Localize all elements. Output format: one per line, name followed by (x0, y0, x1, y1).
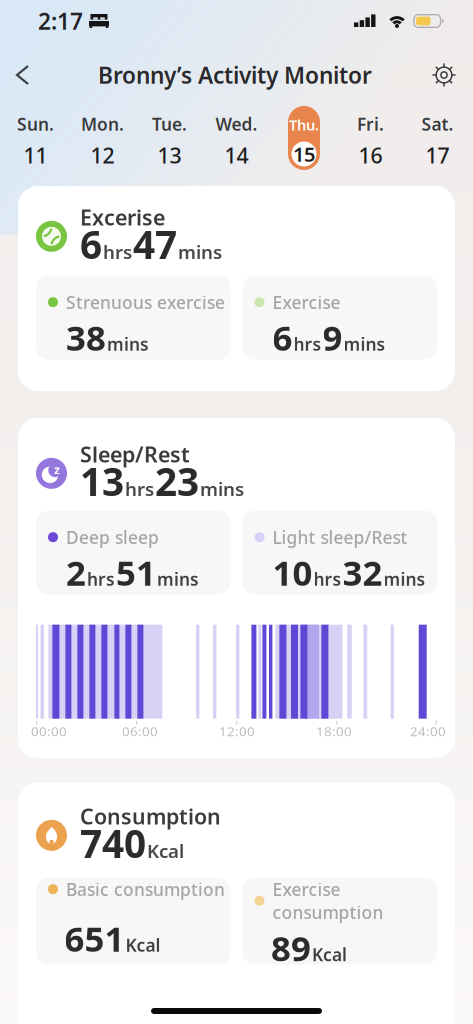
staticText: 16 (358, 141, 382, 169)
staticText: Strenuous exercise (66, 291, 225, 314)
staticText: Kcal (147, 838, 184, 863)
staticText: 13 (157, 141, 181, 169)
button[interactable]: Sat. 17 (404, 113, 471, 169)
staticText: Kcal (125, 933, 160, 956)
staticText: Wed. (215, 113, 257, 136)
staticText: hrs (313, 567, 341, 590)
staticText: Deep sleep (66, 526, 159, 549)
staticText: z (54, 462, 60, 478)
staticText: 2 (66, 549, 86, 595)
staticText: 6 (272, 314, 292, 360)
staticText: Thu. (289, 115, 319, 134)
staticText: 00:00 (31, 722, 67, 740)
staticText: Sleep/Rest (80, 440, 190, 468)
staticText: hrs (103, 239, 132, 264)
staticText: hrs (293, 332, 321, 355)
staticText: 47 (133, 218, 177, 270)
staticText: Mon. (81, 113, 124, 136)
staticText: Exercise (272, 878, 340, 901)
staticText: Light sleep/Rest (272, 526, 407, 549)
button[interactable]: Sun. 11 (2, 113, 69, 169)
staticText: hrs (87, 567, 115, 590)
staticText: Bronny’s Activity Monitor (98, 60, 372, 90)
button[interactable]: Settings (432, 63, 473, 87)
staticText: 15 (293, 141, 315, 167)
staticText: 10 (272, 549, 312, 595)
staticText: consumption (272, 901, 383, 924)
staticText: 14 (224, 141, 248, 169)
button[interactable]: Wed. 14 (203, 113, 270, 169)
staticText: 38 (66, 314, 106, 360)
button[interactable]: Back (0, 66, 38, 84)
staticText: 17 (425, 141, 449, 169)
button[interactable]: Mon. 12 (69, 113, 136, 169)
staticText: Basic consumption (66, 878, 225, 901)
staticText: 12:00 (219, 722, 255, 740)
staticText: mins (107, 332, 149, 355)
staticText: mins (200, 476, 244, 501)
staticText: mins (383, 567, 425, 590)
staticText: mins (178, 239, 222, 264)
staticText: 13 (80, 455, 124, 507)
staticText: mins (157, 567, 199, 590)
staticText: 9 (322, 314, 342, 360)
button[interactable]: Tue. 13 (136, 113, 203, 169)
staticText: 2:17 (38, 6, 83, 36)
staticText: Sun. (17, 113, 54, 136)
staticText: Kcal (312, 943, 347, 966)
staticText: hrs (125, 476, 154, 501)
button[interactable]: Fri. 16 (337, 113, 404, 169)
staticText: 89 (271, 925, 311, 971)
staticText: 12 (90, 141, 114, 169)
staticText: 32 (342, 549, 382, 595)
staticText: Fri. (357, 113, 384, 136)
staticText: 740 (80, 817, 146, 869)
staticText: 24:00 (410, 722, 446, 740)
staticText: Sat. (421, 113, 453, 136)
staticText: 651 (64, 915, 124, 961)
staticText: 6 (80, 218, 102, 270)
staticText: Consumption (80, 802, 221, 830)
staticText: 18:00 (316, 722, 352, 740)
staticText: Tue. (152, 113, 187, 136)
staticText: 51 (116, 549, 156, 595)
staticText: 06:00 (122, 722, 158, 740)
staticText: Exercise (272, 291, 340, 314)
staticText: Excerise (80, 203, 165, 231)
staticText: mins (343, 332, 385, 355)
staticText: 23 (155, 455, 199, 507)
button[interactable]: Thursday 15 (288, 106, 320, 170)
staticText: 11 (23, 141, 47, 169)
